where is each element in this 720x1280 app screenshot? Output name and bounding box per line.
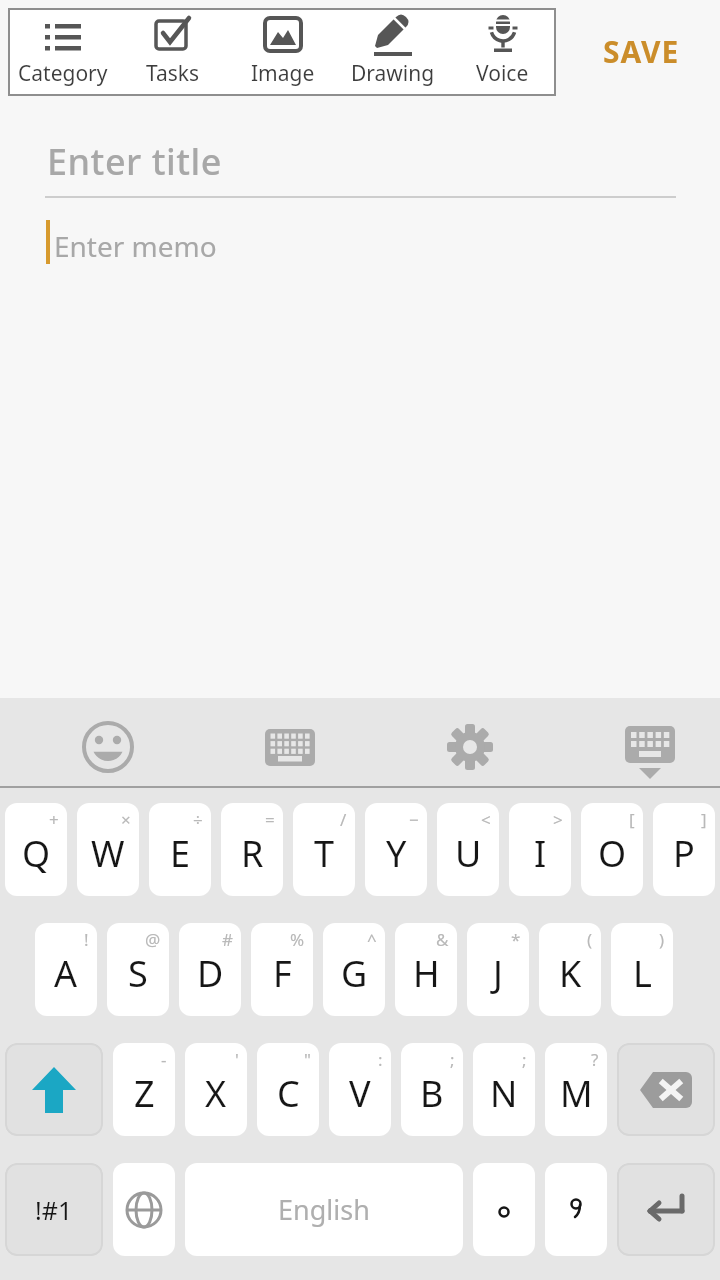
button[interactable]: [473, 1163, 535, 1256]
staticText: ^: [367, 928, 377, 951]
staticText: !: [84, 928, 89, 951]
button[interactable]: <: [437, 803, 499, 896]
button[interactable]: Category: [8, 8, 118, 96]
staticText: E: [170, 829, 191, 878]
button[interactable]: =: [221, 803, 283, 896]
button[interactable]: [82, 721, 134, 773]
staticText: P: [673, 829, 695, 878]
button[interactable]: [265, 729, 315, 766]
staticText: (: [587, 928, 593, 951]
staticText: >: [553, 808, 563, 831]
staticText: R: [241, 829, 264, 878]
button[interactable]: Voice: [448, 8, 556, 96]
staticText: [: [629, 808, 635, 831]
staticText: G: [341, 949, 368, 998]
staticText: Category: [18, 59, 108, 88]
staticText: Z: [134, 1069, 155, 1118]
button[interactable]: &: [395, 923, 457, 1016]
staticText: ;: [450, 1048, 455, 1071]
staticText: Image: [251, 59, 315, 88]
button[interactable]: ): [611, 923, 673, 1016]
staticText: ): [659, 928, 665, 951]
staticText: ': [235, 1048, 239, 1071]
staticText: T: [314, 829, 335, 878]
button[interactable]: ": [257, 1043, 319, 1136]
button[interactable]: [: [581, 803, 643, 896]
staticText: L: [633, 949, 652, 998]
staticText: Enter memo: [54, 227, 217, 265]
staticText: Y: [386, 829, 407, 878]
staticText: ": [304, 1048, 311, 1071]
button[interactable]: [545, 1163, 607, 1256]
staticText: U: [455, 829, 482, 878]
staticText: F: [273, 949, 292, 998]
staticText: English: [278, 1191, 370, 1228]
button[interactable]: [113, 1163, 175, 1256]
staticText: K: [559, 949, 582, 998]
staticText: ;: [522, 1048, 527, 1071]
staticText: %: [290, 928, 305, 951]
staticText: W: [91, 829, 125, 878]
staticText: M: [560, 1069, 593, 1118]
staticText: &: [436, 928, 449, 951]
staticText: S: [128, 949, 148, 998]
staticText: B: [420, 1069, 444, 1118]
button[interactable]: ;: [473, 1043, 535, 1136]
button[interactable]: [617, 1163, 715, 1256]
staticText: −: [409, 808, 419, 831]
staticText: O: [598, 829, 627, 878]
staticText: H: [413, 949, 440, 998]
button[interactable]: (: [539, 923, 601, 1016]
button[interactable]: %: [251, 923, 313, 1016]
button[interactable]: English: [185, 1163, 463, 1256]
button[interactable]: -: [113, 1043, 175, 1136]
button[interactable]: !#1: [5, 1163, 103, 1256]
staticText: SAVE: [603, 31, 680, 72]
staticText: Tasks: [146, 59, 200, 88]
staticText: Drawing: [351, 59, 435, 88]
button[interactable]: [617, 1043, 715, 1136]
button[interactable]: Tasks: [118, 8, 228, 96]
staticText: +: [49, 808, 59, 831]
button[interactable]: [5, 1043, 103, 1136]
staticText: ]: [701, 808, 707, 831]
button[interactable]: [625, 726, 675, 781]
staticText: =: [265, 808, 275, 831]
staticText: :: [378, 1048, 383, 1071]
button[interactable]: ×: [77, 803, 139, 896]
staticText: <: [481, 808, 491, 831]
staticText: X: [205, 1069, 227, 1118]
staticText: Voice: [476, 59, 529, 88]
button[interactable]: !: [35, 923, 97, 1016]
button[interactable]: Image: [228, 8, 338, 96]
staticText: I: [534, 829, 547, 878]
staticText: N: [490, 1069, 518, 1118]
staticText: V: [349, 1069, 371, 1118]
button[interactable]: +: [5, 803, 67, 896]
staticText: A: [54, 949, 78, 998]
staticText: -: [161, 1048, 167, 1071]
staticText: C: [277, 1069, 300, 1118]
button[interactable]: @: [107, 923, 169, 1016]
staticText: #: [222, 928, 233, 951]
staticText: Enter title: [47, 137, 222, 186]
button[interactable]: ÷: [149, 803, 211, 896]
button[interactable]: :: [329, 1043, 391, 1136]
button[interactable]: ': [185, 1043, 247, 1136]
button[interactable]: >: [509, 803, 571, 896]
staticText: *: [511, 928, 521, 951]
button[interactable]: −: [365, 803, 427, 896]
button[interactable]: ]: [653, 803, 715, 896]
button[interactable]: SAVE: [596, 26, 686, 76]
button[interactable]: ^: [323, 923, 385, 1016]
staticText: ?: [591, 1048, 599, 1071]
button[interactable]: [447, 724, 493, 770]
button[interactable]: Drawing: [338, 8, 448, 96]
button[interactable]: *: [467, 923, 529, 1016]
button[interactable]: ?: [545, 1043, 607, 1136]
button[interactable]: /: [293, 803, 355, 896]
staticText: J: [493, 949, 503, 998]
button[interactable]: ;: [401, 1043, 463, 1136]
button[interactable]: #: [179, 923, 241, 1016]
staticText: ÷: [193, 808, 203, 831]
